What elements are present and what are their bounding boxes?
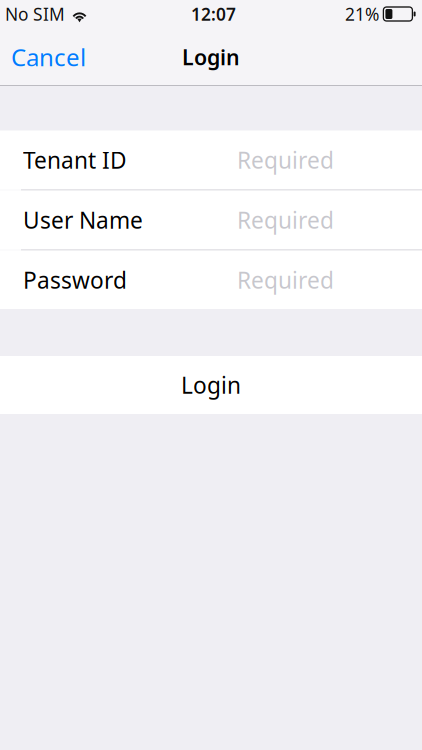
staticText: Login <box>182 43 240 71</box>
staticText: Required <box>237 145 334 175</box>
button[interactable]: Password <box>0 250 422 309</box>
staticText: Password <box>23 265 127 295</box>
button[interactable]: Tenant ID <box>0 130 422 189</box>
staticText: Tenant ID <box>23 145 127 175</box>
staticText: Required <box>237 265 334 295</box>
staticText: User Name <box>23 205 143 235</box>
button[interactable]: User Name <box>0 190 422 249</box>
staticText: 12:07 <box>191 2 236 25</box>
staticText: No SIM <box>5 2 65 25</box>
button[interactable]: Cancel <box>0 28 107 86</box>
staticText: 21% <box>345 2 379 25</box>
button[interactable]: Login <box>0 356 422 414</box>
staticText: Required <box>237 205 334 235</box>
staticText: Cancel <box>11 41 86 73</box>
staticText: Login <box>181 370 241 400</box>
